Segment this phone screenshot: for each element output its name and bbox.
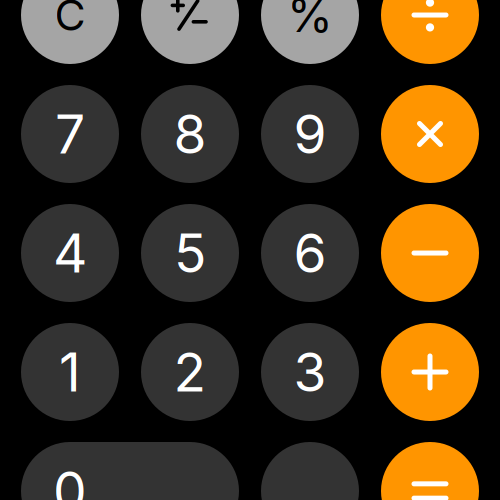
staticText: 0 <box>53 459 87 500</box>
button[interactable]: . <box>261 442 359 500</box>
button[interactable]: 3 <box>261 323 359 421</box>
staticText: 6 <box>293 221 326 285</box>
button[interactable]: Multiply <box>381 85 479 183</box>
button[interactable]: 1 <box>21 323 119 421</box>
button[interactable]: Add <box>381 323 479 421</box>
button[interactable]: 4 <box>21 204 119 302</box>
button[interactable]: 5 <box>141 204 239 302</box>
button[interactable]: Subtract <box>381 204 479 302</box>
staticText: 2 <box>173 340 206 404</box>
button[interactable]: Equals <box>381 442 479 500</box>
button[interactable]: Clear <box>21 0 119 64</box>
staticText: C <box>54 0 85 41</box>
button[interactable]: 0 <box>21 442 239 500</box>
button[interactable]: 2 <box>141 323 239 421</box>
staticText: 5 <box>174 221 206 285</box>
staticText: % <box>287 0 333 43</box>
staticText: 9 <box>293 102 326 166</box>
button[interactable]: 7 <box>21 85 119 183</box>
button[interactable]: 8 <box>141 85 239 183</box>
button[interactable]: Divide <box>381 0 479 64</box>
button[interactable]: Percent <box>261 0 359 64</box>
staticText: 4 <box>53 221 87 285</box>
button[interactable]: 6 <box>261 204 359 302</box>
staticText: 3 <box>293 340 326 404</box>
button[interactable]: Change sign <box>141 0 239 64</box>
staticText: 7 <box>55 102 85 166</box>
staticText: 8 <box>173 102 206 166</box>
button[interactable]: 9 <box>261 85 359 183</box>
staticText: 1 <box>59 340 81 404</box>
